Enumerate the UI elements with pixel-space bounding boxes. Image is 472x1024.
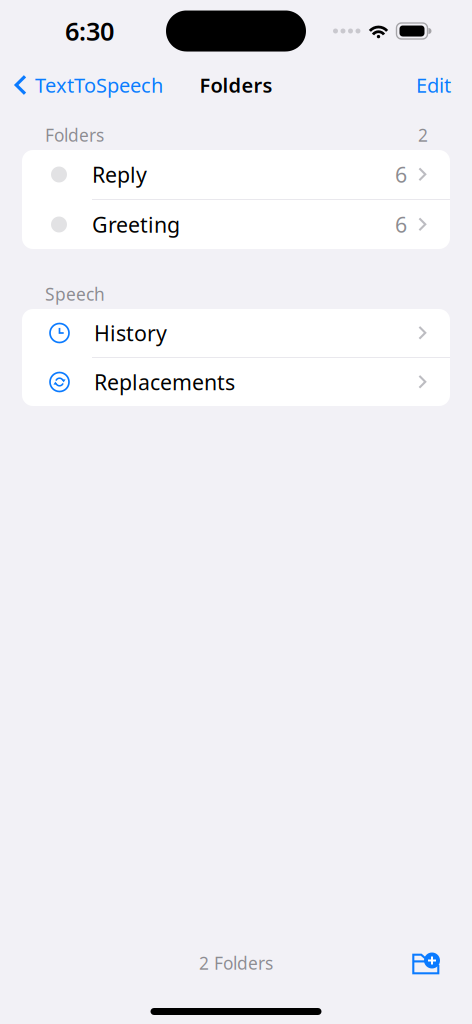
button[interactable]: Reply: [22, 150, 450, 199]
button[interactable]: History: [22, 309, 450, 357]
staticText: 6: [395, 210, 407, 239]
staticText: 2 Folders: [199, 951, 273, 974]
button[interactable]: New Folder: [409, 942, 472, 983]
staticText: Greeting: [92, 210, 180, 239]
staticText: Edit: [416, 72, 451, 98]
button[interactable]: Greeting: [22, 200, 450, 249]
staticText: 6: [395, 160, 407, 189]
staticText: TextToSpeech: [35, 72, 163, 98]
staticText: 6:30: [65, 14, 114, 48]
staticText: History: [94, 319, 167, 347]
staticText: 2: [418, 123, 428, 146]
staticText: Replacements: [94, 368, 235, 396]
button[interactable]: Edit: [416, 64, 472, 106]
staticText: Speech: [45, 282, 105, 305]
button[interactable]: TextToSpeech: [0, 64, 163, 106]
staticText: Folders: [45, 123, 104, 146]
staticText: Folders: [199, 72, 272, 98]
button[interactable]: Replacements: [22, 358, 450, 406]
staticText: Reply: [92, 160, 147, 189]
